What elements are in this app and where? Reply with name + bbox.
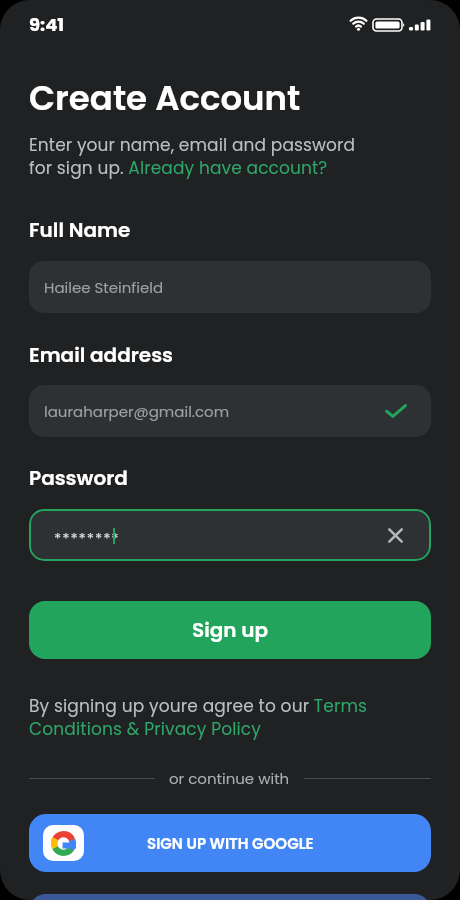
staticText: By signing up youre agree to our Terms C… — [29, 694, 377, 741]
staticText: 9:41 — [29, 12, 65, 37]
staticText: Sign up — [192, 616, 269, 644]
staticText: Create Account — [29, 74, 301, 122]
staticText: or continue with — [169, 768, 290, 789]
staticText: Password — [29, 464, 128, 492]
other: Valid — [385, 404, 407, 418]
staticText: Hailee Steinfield — [44, 277, 164, 298]
button[interactable]: lauraharper@gmail.com — [29, 385, 431, 437]
staticText: Full Name — [29, 216, 131, 244]
staticText: lauraharper@gmail.com — [44, 401, 230, 422]
staticText: Email address — [29, 341, 173, 369]
other: Clear password — [388, 528, 403, 543]
staticText: SIGN UP WITH GOOGLE — [147, 833, 314, 854]
staticText: Enter your name, email and password for … — [29, 133, 369, 180]
button[interactable]: Hailee Steinfield — [29, 261, 431, 313]
button[interactable]: SIGN UP WITH FACEBOOK — [29, 894, 431, 900]
button[interactable]: SIGN UP WITH GOOGLE — [29, 814, 431, 872]
staticText: ******** — [54, 528, 120, 549]
button[interactable]: Sign up — [29, 601, 431, 659]
button[interactable]: ******** — [29, 509, 431, 561]
